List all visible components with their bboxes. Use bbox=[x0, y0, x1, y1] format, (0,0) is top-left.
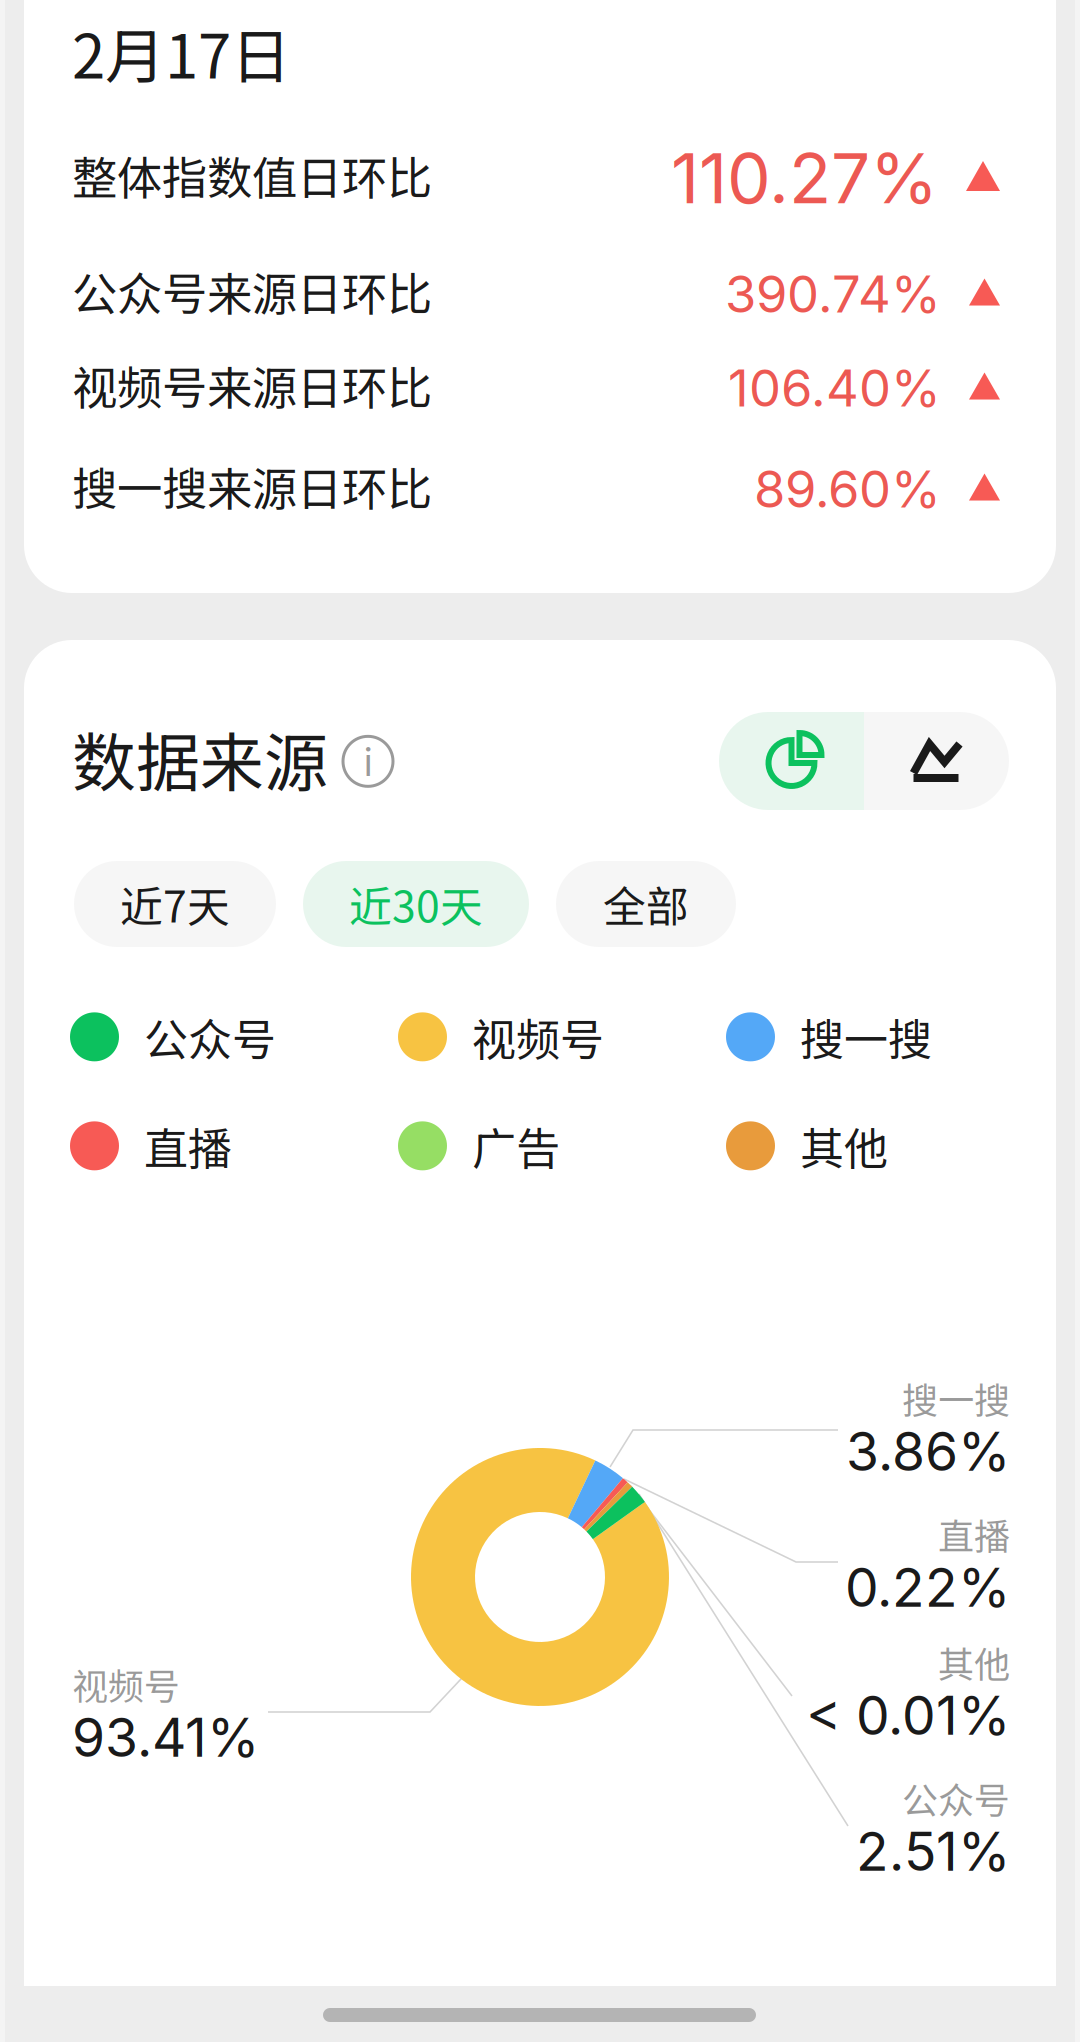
staticText: 其他 bbox=[800, 1114, 888, 1178]
staticText: 公众号来源日环比 bbox=[72, 258, 432, 324]
staticText: 视频号 bbox=[472, 1005, 604, 1069]
staticText: 广告 bbox=[472, 1114, 560, 1178]
staticText: 3.86% bbox=[846, 1419, 1010, 1484]
staticText: 公众号 bbox=[902, 1772, 1010, 1824]
staticText: 其他 bbox=[938, 1636, 1010, 1688]
staticText: 公众号 bbox=[144, 1005, 276, 1069]
button[interactable]: 公众号来源日环比 bbox=[72, 263, 1000, 319]
staticText: 110.27% bbox=[671, 136, 938, 220]
button[interactable]: 整体指数值日环比 bbox=[72, 147, 1000, 203]
staticText: 视频号 bbox=[72, 1658, 180, 1710]
staticText: 整体指数值日环比 bbox=[72, 142, 432, 208]
button[interactable]: 全部 bbox=[556, 861, 736, 947]
staticText: 0.22% bbox=[845, 1555, 1010, 1620]
button[interactable]: Line chart view bbox=[864, 712, 1009, 810]
staticText: 89.60% bbox=[754, 458, 941, 520]
staticText: < 0.01% bbox=[806, 1683, 1010, 1748]
button[interactable]: 视频号来源日环比 bbox=[72, 357, 1000, 413]
staticText: 搜一搜 bbox=[902, 1372, 1010, 1424]
staticText: 2月17日 bbox=[72, 9, 291, 96]
staticText: i bbox=[364, 737, 372, 785]
button[interactable]: 搜一搜来源日环比 bbox=[72, 458, 1000, 514]
button[interactable]: 近30天 bbox=[303, 861, 529, 947]
staticText: 全部 bbox=[603, 873, 689, 935]
staticText: 数据来源 bbox=[72, 712, 328, 805]
button[interactable]: 近7天 bbox=[74, 861, 276, 947]
button[interactable]: Pie chart view bbox=[719, 712, 864, 810]
staticText: 直播 bbox=[144, 1114, 232, 1178]
staticText: 搜一搜 bbox=[800, 1005, 932, 1069]
staticText: 近7天 bbox=[120, 873, 230, 935]
staticText: 直播 bbox=[938, 1508, 1010, 1560]
staticText: 视频号来源日环比 bbox=[72, 352, 432, 418]
staticText: 93.41% bbox=[72, 1705, 259, 1770]
button[interactable]: About data sources bbox=[343, 733, 393, 783]
staticText: 近30天 bbox=[349, 873, 483, 935]
staticText: 390.74% bbox=[725, 263, 941, 325]
staticText: 2.51% bbox=[856, 1819, 1010, 1884]
staticText: 搜一搜来源日环比 bbox=[72, 453, 432, 519]
staticText: 106.40% bbox=[728, 357, 941, 419]
